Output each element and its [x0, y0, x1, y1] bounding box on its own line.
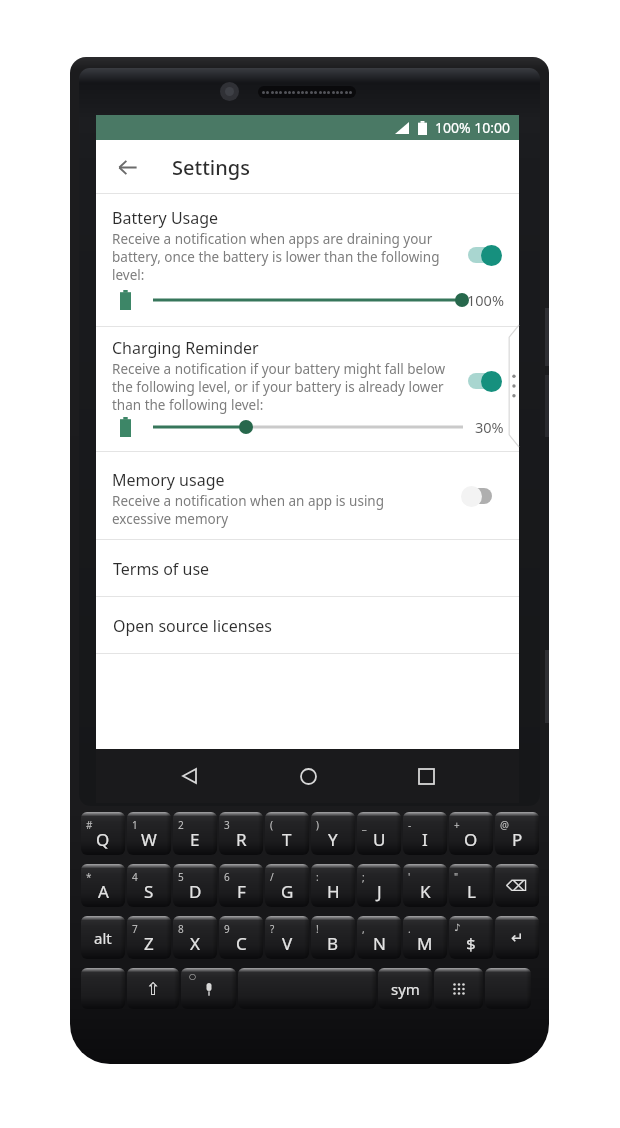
staticText: ↵ [511, 929, 524, 946]
button[interactable]: Charging Reminder [96, 327, 519, 452]
button[interactable]: X [173, 916, 217, 959]
staticText: Z [144, 932, 154, 955]
button[interactable]: V [265, 916, 309, 959]
staticText: + [454, 818, 460, 832]
staticText: ' [408, 870, 411, 884]
staticText: level: [112, 266, 145, 284]
staticText: U [373, 828, 386, 851]
button[interactable]: Back [163, 750, 215, 802]
button[interactable]: E [173, 812, 217, 855]
button[interactable]: Toggle on [466, 370, 502, 392]
button[interactable]: I [403, 812, 447, 855]
button[interactable]: Battery Usage [96, 194, 519, 327]
staticText: 8 [178, 922, 184, 936]
staticText: Q [96, 828, 110, 851]
button[interactable]: K [403, 864, 447, 907]
button[interactable]: Recents [400, 750, 452, 802]
staticText: ) [316, 818, 319, 832]
button[interactable]: ⌫ [495, 864, 539, 907]
staticText: Y [328, 828, 338, 851]
staticText: F [237, 880, 246, 903]
button[interactable]: A [81, 864, 125, 907]
staticText: ⇧ [146, 979, 161, 999]
staticText: sym [391, 979, 420, 999]
staticText: 30% [475, 417, 504, 437]
button[interactable]: key [485, 968, 531, 1009]
button[interactable]: Terms of use [96, 540, 519, 597]
button[interactable]: Q [81, 812, 125, 855]
button[interactable]: key [434, 968, 483, 1009]
staticText: 4 [132, 870, 138, 884]
staticText: Terms of use [113, 558, 210, 580]
staticText: Receive a notification when an app is us… [112, 492, 385, 510]
staticText: B [327, 932, 339, 955]
button[interactable]: J [357, 864, 401, 907]
staticText: ○ [189, 972, 196, 981]
button[interactable]: ↵ [495, 916, 539, 959]
button[interactable]: H [311, 864, 355, 907]
staticText: C [236, 932, 247, 955]
staticText: W [141, 828, 157, 851]
staticText: L [467, 880, 476, 903]
staticText: V [282, 932, 293, 955]
staticText: H [327, 880, 340, 903]
staticText: ♪ [454, 922, 461, 934]
button[interactable]: R [219, 812, 263, 855]
staticText: : [316, 870, 319, 884]
button[interactable]: Open source licenses [96, 597, 519, 654]
button[interactable]: $ [449, 916, 493, 959]
button[interactable]: G [265, 864, 309, 907]
button[interactable]: M [403, 916, 447, 959]
button[interactable]: T [265, 812, 309, 855]
staticText: P [512, 828, 523, 851]
button[interactable]: Toggle on [466, 244, 502, 266]
staticText: excessive memory [112, 510, 229, 528]
staticText: Memory usage [112, 469, 225, 491]
button[interactable]: Memory usage [96, 452, 519, 540]
staticText: R [236, 828, 247, 851]
button[interactable]: ⇧ [127, 968, 179, 1009]
staticText: J [377, 880, 382, 903]
button[interactable]: alt [81, 916, 125, 959]
staticText: ! [316, 922, 319, 936]
button[interactable]: sym [378, 968, 432, 1009]
staticText: - [408, 818, 412, 832]
staticText: Charging Reminder [112, 337, 259, 359]
staticText: A [98, 880, 109, 903]
staticText: 100% 10:00 [435, 118, 511, 137]
button[interactable]: D [173, 864, 217, 907]
button[interactable]: Z [127, 916, 171, 959]
staticText: 100% [467, 290, 504, 310]
staticText: 1 [132, 818, 138, 832]
staticText: $ [466, 932, 476, 955]
button[interactable]: key [181, 968, 236, 1009]
button[interactable]: L [449, 864, 493, 907]
staticText: than the following level: [112, 396, 264, 414]
button[interactable]: S [127, 864, 171, 907]
staticText: D [189, 880, 202, 903]
staticText: , [362, 922, 365, 936]
staticText: G [281, 880, 294, 903]
button[interactable]: Toggle off [461, 485, 497, 507]
staticText: Receive a notification if your battery m… [112, 360, 446, 378]
staticText: ⌫ [506, 877, 528, 894]
button[interactable]: N [357, 916, 401, 959]
button[interactable]: B [311, 916, 355, 959]
button[interactable]: U [357, 812, 401, 855]
staticText: 6 [224, 870, 230, 884]
button[interactable]: Home [282, 750, 334, 802]
staticText: 7 [132, 922, 138, 936]
staticText: O [464, 828, 478, 851]
button[interactable]: key [238, 968, 376, 1009]
button[interactable]: Back [101, 141, 153, 193]
button[interactable]: key [81, 968, 125, 1009]
staticText: _ [362, 818, 367, 832]
staticText: . [408, 922, 411, 936]
staticText: @ [500, 818, 509, 832]
button[interactable]: W [127, 812, 171, 855]
button[interactable]: Y [311, 812, 355, 855]
button[interactable]: P [495, 812, 539, 855]
button[interactable]: C [219, 916, 263, 959]
button[interactable]: F [219, 864, 263, 907]
button[interactable]: O [449, 812, 493, 855]
